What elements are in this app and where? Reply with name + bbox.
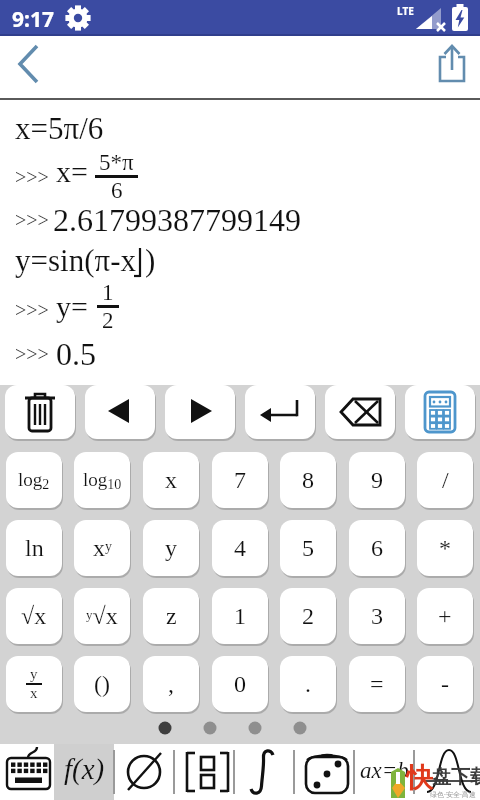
staticText: x=5π/6 — [15, 111, 104, 145]
staticText: z — [166, 603, 177, 630]
staticText: 9:17 — [12, 5, 54, 34]
button[interactable]: f(x) — [64, 753, 105, 785]
staticText: - — [441, 671, 449, 698]
button[interactable] — [54, 744, 114, 800]
button[interactable]: y√x — [74, 588, 130, 644]
button[interactable]: 8 — [280, 452, 336, 508]
button[interactable] — [5, 385, 75, 439]
button[interactable] — [234, 744, 294, 800]
staticText: √x — [21, 603, 47, 630]
button[interactable] — [414, 744, 474, 800]
button[interactable]: 6 — [349, 520, 405, 576]
button[interactable]: log2 — [6, 452, 62, 508]
button[interactable] — [354, 744, 414, 800]
staticText: y — [30, 666, 38, 683]
button[interactable]: 2 — [280, 588, 336, 644]
staticText: / — [442, 467, 449, 494]
staticText: LTE — [397, 4, 414, 18]
staticText: y= — [56, 290, 88, 323]
button[interactable]: - — [417, 656, 473, 712]
staticText: log10 — [83, 469, 122, 492]
staticText: x — [165, 467, 177, 494]
staticText: y√x — [86, 603, 118, 630]
staticText: y=sin(π-x — [15, 243, 136, 277]
staticText: + — [438, 603, 452, 630]
staticText: >>> — [15, 209, 49, 231]
button[interactable]: , — [143, 656, 199, 712]
button[interactable]: 1 — [212, 588, 268, 644]
button[interactable] — [0, 744, 54, 800]
staticText: = — [370, 671, 384, 698]
button[interactable] — [85, 385, 155, 439]
button[interactable] — [430, 41, 474, 85]
staticText: . — [305, 671, 311, 698]
button[interactable]: y — [143, 520, 199, 576]
staticText: 5 — [302, 535, 314, 562]
staticText: 绿色·安全·高速 — [430, 790, 476, 800]
button[interactable] — [325, 385, 395, 439]
staticText: 7 — [234, 467, 246, 494]
button[interactable] — [114, 744, 174, 800]
staticText: 6 — [371, 535, 383, 562]
staticText: 1 — [234, 603, 246, 630]
button[interactable] — [405, 385, 475, 439]
staticText: * — [439, 535, 451, 562]
staticText: 4 — [234, 535, 246, 562]
button[interactable] — [174, 744, 234, 800]
staticText: 8 — [302, 467, 314, 494]
button[interactable]: √x — [6, 588, 62, 644]
staticText: 6 — [111, 178, 123, 203]
button[interactable]: log10 — [74, 452, 130, 508]
staticText: 1 — [102, 280, 114, 305]
staticText: 2 — [102, 308, 114, 333]
button[interactable]: / — [417, 452, 473, 508]
staticText: y — [165, 535, 177, 562]
button[interactable]: 0 — [212, 656, 268, 712]
staticText: 0.5 — [56, 336, 96, 371]
staticText: ax=b — [360, 758, 409, 783]
staticText: () — [94, 671, 110, 698]
button[interactable] — [294, 744, 354, 800]
staticText: >>> — [15, 299, 49, 321]
staticText: 5*π — [99, 150, 134, 175]
button[interactable]: 7 — [212, 452, 268, 508]
staticText: 0 — [234, 671, 246, 698]
button[interactable]: x — [143, 452, 199, 508]
button[interactable] — [165, 385, 235, 439]
button[interactable]: () — [74, 656, 130, 712]
button[interactable]: 3 — [349, 588, 405, 644]
button[interactable]: xy — [74, 520, 130, 576]
staticText: , — [168, 671, 174, 698]
button[interactable]: . — [280, 656, 336, 712]
staticText: 盘下载 — [432, 765, 480, 789]
staticText: x= — [56, 155, 88, 188]
staticText: 2 — [302, 603, 314, 630]
staticText: 2.61799387799149 — [53, 202, 301, 237]
button[interactable]: + — [417, 588, 473, 644]
staticText: log2 — [18, 469, 50, 492]
button[interactable]: 9 — [349, 452, 405, 508]
button[interactable] — [245, 385, 315, 439]
staticText: 3 — [371, 603, 383, 630]
staticText: 9 — [371, 467, 383, 494]
staticText: >>> — [15, 343, 49, 365]
button[interactable]: * — [417, 520, 473, 576]
button[interactable]: z — [143, 588, 199, 644]
button[interactable]: ln — [6, 520, 62, 576]
staticText: ) — [145, 243, 156, 277]
button[interactable]: y — [6, 656, 62, 712]
button[interactable] — [8, 43, 52, 87]
staticText: xy — [93, 535, 112, 562]
button[interactable]: = — [349, 656, 405, 712]
button[interactable]: 4 — [212, 520, 268, 576]
staticText: x — [30, 685, 38, 702]
staticText: >>> — [15, 166, 49, 188]
staticText: ln — [25, 535, 44, 562]
staticText: 快 — [406, 761, 433, 795]
button[interactable]: 5 — [280, 520, 336, 576]
